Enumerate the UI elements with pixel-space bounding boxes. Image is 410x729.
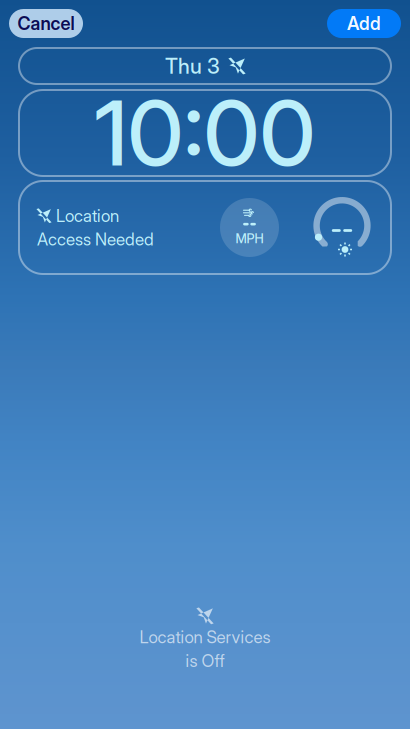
button[interactable]: Cancel (9, 9, 83, 38)
staticText: 10:00 (94, 79, 315, 187)
staticText: Thu 3 (165, 53, 220, 79)
staticText: Access Needed (37, 229, 154, 250)
button[interactable]: Add (327, 9, 401, 38)
staticText: is Off (185, 650, 224, 671)
staticText: Location Services (139, 627, 270, 647)
staticText: MPH (235, 231, 263, 246)
staticText: Location (56, 205, 119, 226)
staticText: Add (347, 13, 381, 34)
staticText: Cancel (17, 13, 74, 34)
